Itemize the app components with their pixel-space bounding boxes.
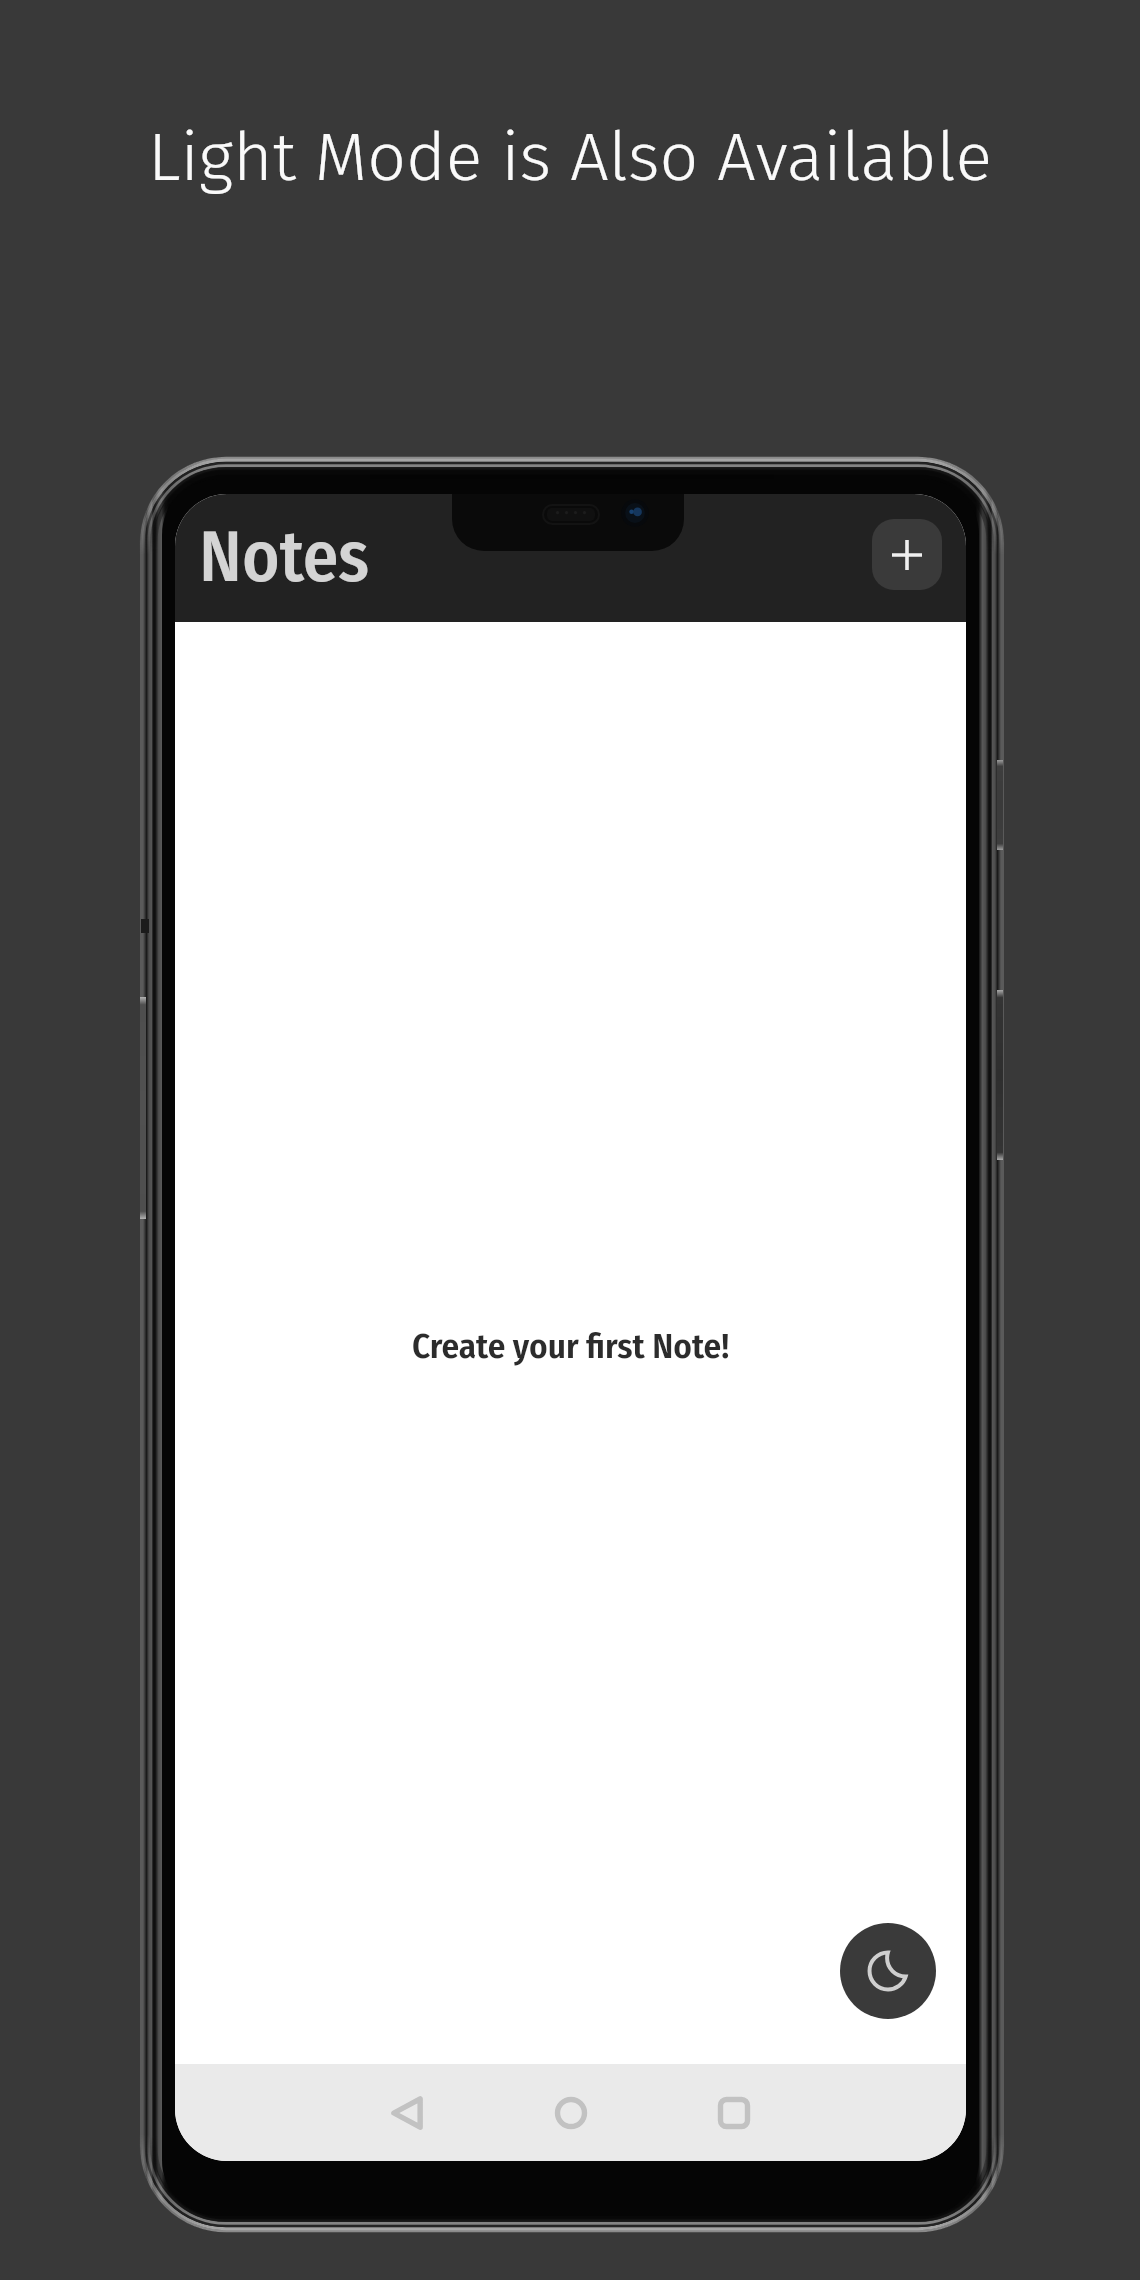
staticText: Notes <box>199 515 370 600</box>
button[interactable]: Back <box>387 2093 427 2133</box>
button[interactable]: Add note <box>872 519 942 590</box>
button[interactable]: Recent apps <box>714 2093 754 2133</box>
button[interactable]: Home <box>551 2093 591 2133</box>
staticText: Create your first Note! <box>412 1325 730 1367</box>
staticText: Light Mode is Also Available <box>148 116 992 198</box>
button[interactable]: Toggle dark mode <box>840 1923 936 2019</box>
